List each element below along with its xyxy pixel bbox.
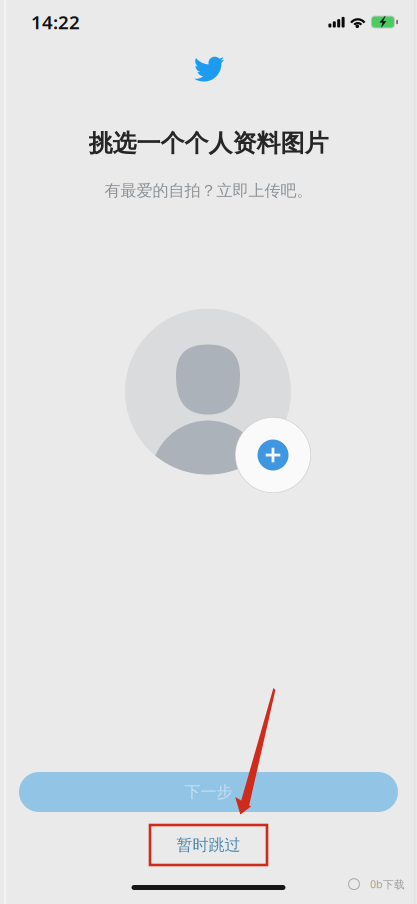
staticText: 有最爱的自拍？立即上传吧。 bbox=[104, 181, 312, 201]
staticText: 0b下载 bbox=[370, 877, 405, 891]
button[interactable]: 暂时跳过 bbox=[150, 825, 267, 865]
staticText: 暂时跳过 bbox=[176, 835, 240, 855]
staticText: 14:22 bbox=[31, 10, 80, 34]
staticText: 下一步 bbox=[184, 782, 232, 802]
button[interactable]: Add profile photo bbox=[235, 417, 311, 493]
button[interactable]: 下一步 bbox=[19, 772, 398, 812]
staticText: 挑选一个个人资料图片 bbox=[88, 128, 328, 158]
